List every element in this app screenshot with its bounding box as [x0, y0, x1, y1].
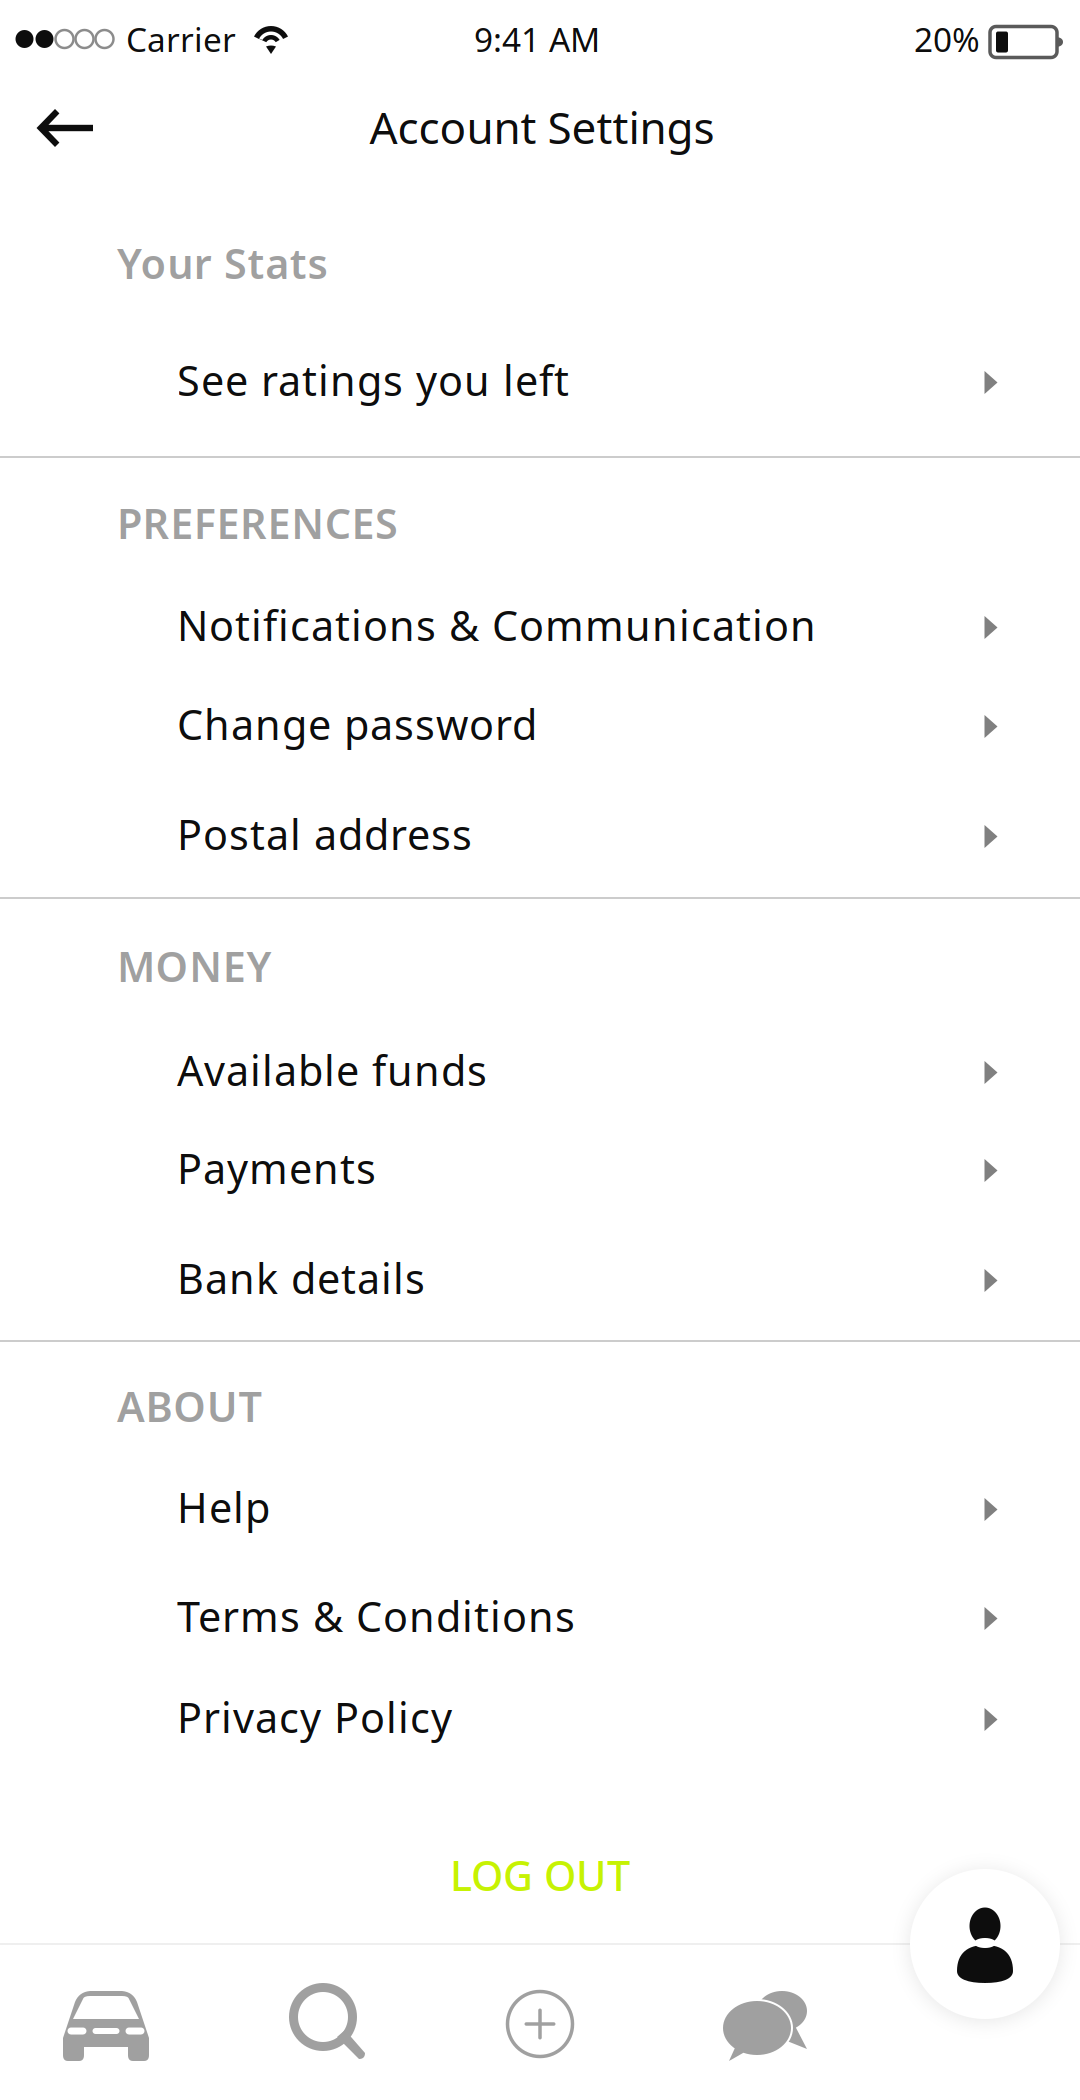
staticText: See ratings you left: [177, 353, 569, 407]
staticText: Privacy Policy: [177, 1690, 452, 1744]
button[interactable]: Change password: [0, 674, 1080, 774]
button[interactable]: Help: [0, 1457, 1080, 1557]
button[interactable]: Available funds: [0, 1020, 1080, 1120]
button[interactable]: Profile: [897, 1856, 1073, 2032]
button[interactable]: Messages: [658, 1949, 874, 2100]
staticText: Bank details: [177, 1251, 425, 1305]
button[interactable]: Payments: [0, 1118, 1080, 1218]
staticText: PREFERENCES: [117, 496, 398, 550]
button[interactable]: LOG OUT: [380, 1829, 700, 1921]
button[interactable]: Back: [7, 72, 123, 184]
staticText: MONEY: [117, 939, 271, 993]
staticText: Change password: [177, 697, 537, 751]
button[interactable]: Privacy Policy: [0, 1667, 1080, 1767]
staticText: Payments: [177, 1141, 376, 1195]
staticText: LOG OUT: [450, 1848, 630, 1902]
button[interactable]: Terms & Conditions: [0, 1566, 1080, 1666]
staticText: 9:41 AM: [474, 17, 600, 61]
staticText: Your Stats: [117, 236, 327, 290]
staticText: ABOUT: [117, 1379, 262, 1433]
button[interactable]: Search: [221, 1946, 437, 2100]
button[interactable]: Rides: [0, 1948, 214, 2100]
staticText: Account Settings: [369, 98, 714, 156]
staticText: Help: [177, 1480, 270, 1534]
button[interactable]: Bank details: [0, 1228, 1080, 1328]
staticText: Carrier: [126, 17, 236, 61]
button[interactable]: See ratings you left: [0, 330, 1080, 430]
button[interactable]: Postal address: [0, 784, 1080, 884]
staticText: Notifications & Communication: [177, 598, 816, 652]
staticText: Available funds: [177, 1043, 487, 1097]
staticText: Postal address: [177, 807, 472, 861]
button[interactable]: Add: [432, 1946, 648, 2100]
staticText: 20%: [914, 17, 980, 61]
button[interactable]: Notifications & Communication: [0, 575, 1080, 675]
staticText: Terms & Conditions: [177, 1589, 575, 1643]
